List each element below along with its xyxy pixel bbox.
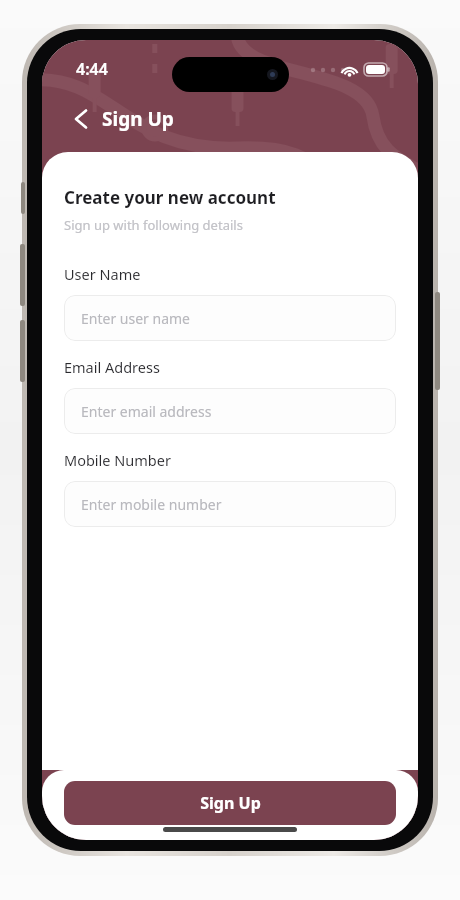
button[interactable]: Enter user name bbox=[64, 295, 396, 341]
staticText: Sign up with following details bbox=[64, 216, 243, 234]
staticText: Sign Up bbox=[200, 792, 261, 814]
button[interactable]: Enter email address bbox=[64, 388, 396, 434]
staticText: Email Address bbox=[64, 357, 160, 377]
staticText: Enter email address bbox=[81, 402, 212, 421]
staticText: Enter mobile number bbox=[81, 495, 222, 514]
staticText: User Name bbox=[64, 264, 141, 284]
button[interactable]: Back bbox=[64, 102, 98, 136]
staticText: Mobile Number bbox=[64, 450, 171, 470]
staticText: Sign Up bbox=[102, 106, 174, 132]
button[interactable]: Enter mobile number bbox=[64, 481, 396, 527]
staticText: 4:44 bbox=[76, 58, 108, 80]
staticText: Enter user name bbox=[81, 309, 190, 328]
button[interactable]: Sign Up bbox=[64, 781, 396, 825]
staticText: Create your new account bbox=[64, 186, 276, 209]
